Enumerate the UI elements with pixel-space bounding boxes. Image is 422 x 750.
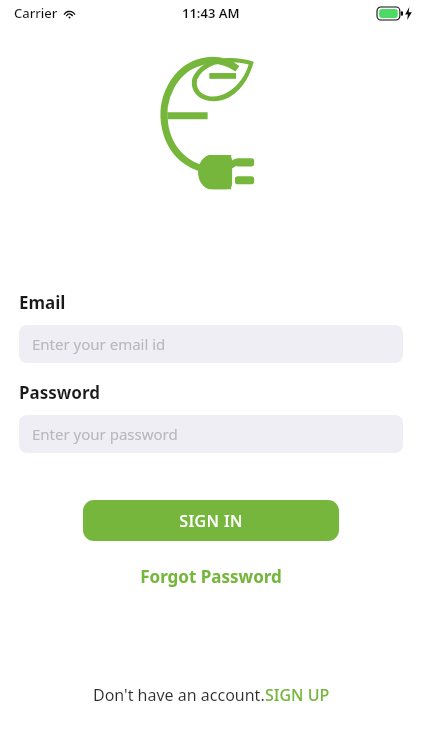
staticText: SIGN IN (179, 510, 243, 532)
staticText: Enter your password (32, 424, 178, 444)
staticText: Email (19, 291, 66, 314)
staticText: Enter your email id (32, 334, 166, 354)
staticText: Password (19, 381, 100, 404)
staticText: SIGN UP (265, 684, 330, 706)
staticText: Forgot Password (140, 565, 282, 588)
staticText: Carrier (14, 4, 58, 22)
staticText: Don't have an account. (93, 684, 265, 706)
button[interactable]: SIGN UP (265, 684, 330, 706)
button[interactable]: Forgot Password (132, 562, 290, 591)
button[interactable]: SIGN IN (83, 500, 339, 541)
button[interactable]: Enter your password (19, 415, 403, 453)
button[interactable]: Enter your email id (19, 325, 403, 363)
staticText: 11:43 AM (182, 4, 240, 22)
